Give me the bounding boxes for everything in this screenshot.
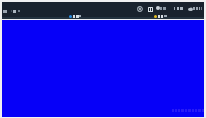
button[interactable]: Settings [2,2,204,19]
button[interactable] [68,13,88,19]
button[interactable] [152,13,172,19]
button[interactable]: App [148,7,153,12]
button[interactable]: Settings [137,6,143,12]
